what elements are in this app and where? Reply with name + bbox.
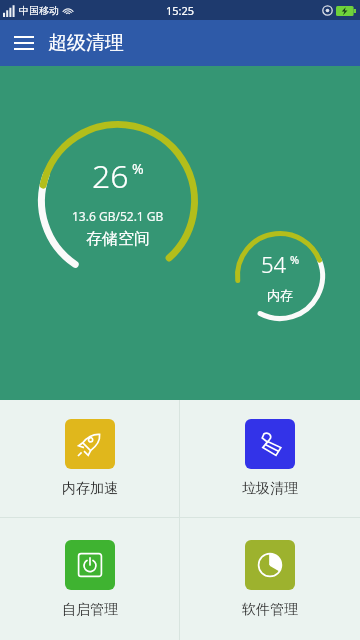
button[interactable]: 软件管理 xyxy=(180,518,360,640)
staticText: 垃圾清理 xyxy=(242,480,298,498)
staticText: 自启管理 xyxy=(62,601,118,619)
staticText: 超级清理 xyxy=(48,31,124,55)
staticText: 26 xyxy=(92,154,129,198)
staticText: 中国移动 xyxy=(19,4,59,17)
staticText: % xyxy=(290,252,300,267)
button[interactable]: 垃圾清理 xyxy=(180,400,360,517)
button[interactable]: 内存加速 xyxy=(0,400,179,517)
staticText: 内存 xyxy=(267,287,293,303)
staticText: % xyxy=(132,159,144,178)
staticText: 内存加速 xyxy=(62,480,118,498)
staticText: 13.6 GB/52.1 GB xyxy=(72,208,164,224)
button[interactable]: Menu xyxy=(8,27,40,59)
button[interactable]: 自启管理 xyxy=(0,518,179,640)
staticText: 54 xyxy=(261,249,287,279)
staticText: 15:25 xyxy=(166,3,195,18)
staticText: 软件管理 xyxy=(242,601,298,619)
staticText: 存储空间 xyxy=(86,229,150,249)
